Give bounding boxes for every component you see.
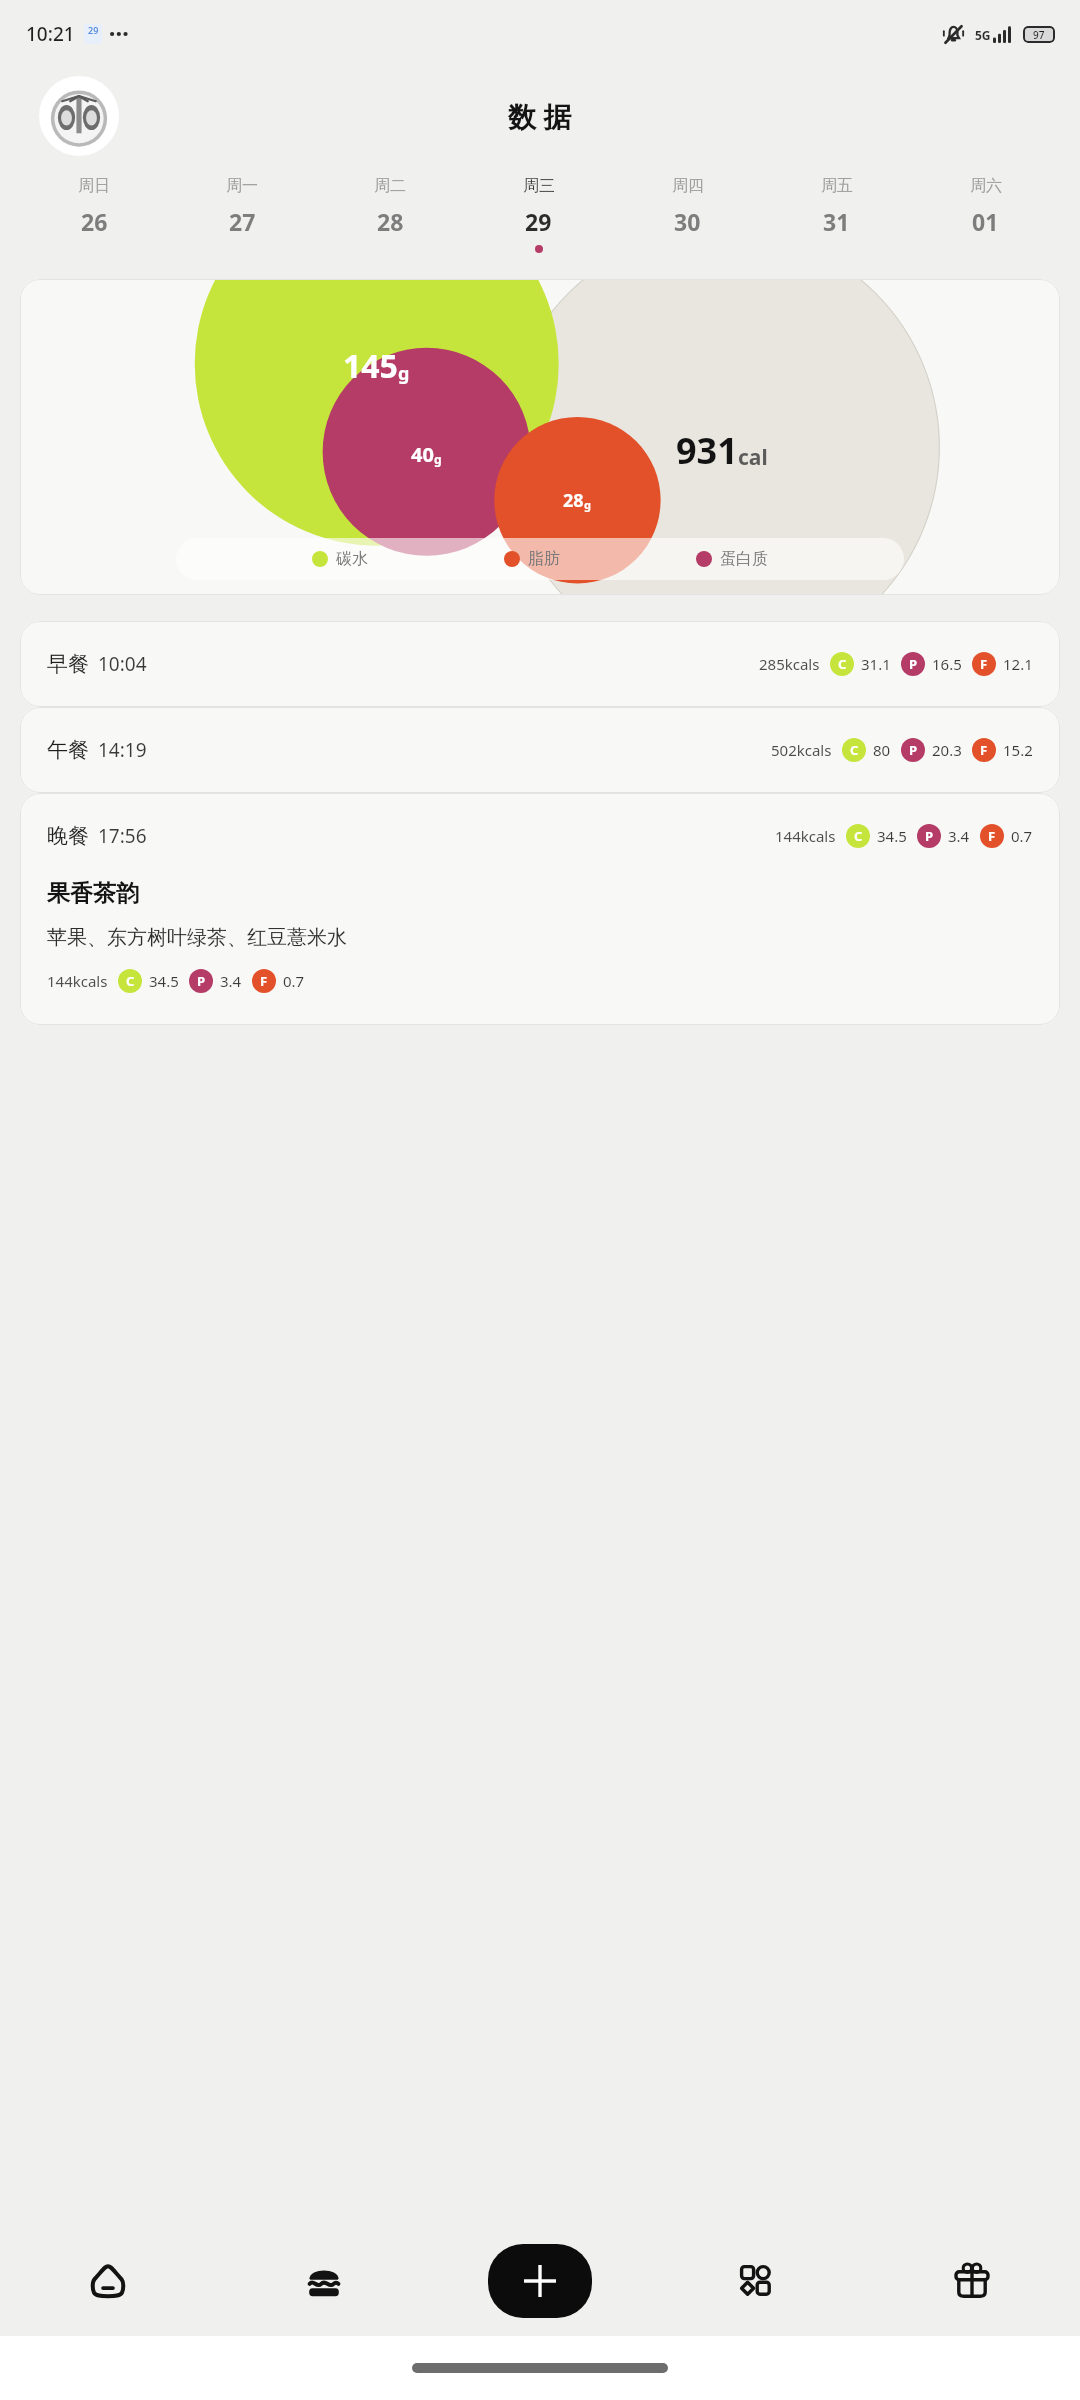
staticText: 3.4 [220, 971, 242, 991]
staticText: 15.2 [1003, 740, 1033, 760]
staticText: 931 [676, 426, 738, 475]
button[interactable]: 蛋白质 [696, 549, 768, 569]
staticText: 144kcals [775, 826, 836, 846]
staticText: 蛋白质 [720, 549, 768, 569]
button[interactable]: 早餐 [20, 621, 1060, 707]
staticText: 周四 [672, 176, 704, 196]
staticText: 果香茶韵 [47, 879, 139, 908]
staticText: F [980, 741, 988, 759]
button[interactable]: Add entry [488, 2244, 592, 2318]
staticText: 80 [873, 740, 891, 760]
staticText: 10:21 [26, 21, 75, 47]
staticText: 34.5 [149, 971, 179, 991]
staticText: P [197, 972, 206, 990]
staticText: 285kcals [759, 654, 820, 674]
staticText: C [854, 827, 863, 845]
staticText: C [850, 741, 859, 759]
button[interactable]: Rewards [864, 2226, 1080, 2336]
staticText: P [925, 827, 934, 845]
button[interactable]: Discover [648, 2226, 864, 2336]
staticText: 502kcals [771, 740, 832, 760]
button[interactable]: 晚餐 [20, 793, 1060, 1025]
staticText: 晚餐 [47, 823, 89, 849]
staticText: 数 据 [508, 97, 572, 135]
staticText: 0.7 [283, 971, 305, 991]
staticText: 29 [88, 24, 99, 36]
staticText: 26 [81, 206, 108, 237]
staticText: 周二 [374, 176, 406, 196]
staticText: 28 [377, 206, 404, 237]
staticText: 34.5 [877, 826, 907, 846]
staticText: 28 [563, 488, 584, 513]
staticText: C [126, 972, 135, 990]
button[interactable]: 周四 [613, 176, 762, 253]
staticText: 5G [975, 27, 991, 43]
staticText: 脂肪 [528, 549, 560, 569]
staticText: F [988, 827, 996, 845]
staticText: P [909, 655, 918, 673]
staticText: 29 [525, 206, 552, 237]
staticText: 31 [823, 206, 850, 237]
staticText: 周一 [226, 176, 258, 196]
button[interactable]: 周五 [762, 176, 911, 253]
staticText: 0.7 [1011, 826, 1033, 846]
button[interactable]: 周六 [911, 176, 1060, 253]
staticText: 午餐 [47, 737, 89, 763]
button[interactable]: 周二 [316, 176, 464, 253]
staticText: cal [738, 443, 768, 472]
button[interactable]: 周一 [168, 176, 316, 253]
button[interactable]: Meals [216, 2226, 432, 2336]
staticText: F [980, 655, 988, 673]
staticText: 苹果、东方树叶绿茶、红豆薏米水 [47, 925, 347, 950]
button[interactable]: 午餐 [20, 707, 1060, 793]
staticText: 周三 [523, 176, 555, 196]
staticText: 3.4 [948, 826, 970, 846]
button[interactable]: Profile [39, 76, 119, 156]
staticText: 14:19 [98, 737, 147, 763]
button[interactable]: 145 [20, 279, 1060, 595]
staticText: 97 [1033, 28, 1045, 42]
staticText: F [260, 972, 268, 990]
staticText: g [434, 451, 442, 467]
staticText: 10:04 [98, 651, 147, 677]
staticText: 27 [229, 206, 256, 237]
staticText: g [584, 497, 591, 512]
button[interactable]: Home [0, 2226, 216, 2336]
button[interactable]: 周三 [464, 176, 613, 253]
staticText: 周五 [821, 176, 853, 196]
staticText: 40 [411, 441, 434, 468]
staticText: 早餐 [47, 651, 89, 677]
staticText: 20.3 [932, 740, 962, 760]
staticText: 31.1 [861, 654, 891, 674]
button[interactable]: 碳水 [312, 549, 368, 569]
staticText: 16.5 [932, 654, 962, 674]
staticText: P [909, 741, 918, 759]
button[interactable]: 周日 [20, 176, 168, 253]
staticText: 01 [972, 206, 999, 237]
staticText: C [838, 655, 847, 673]
staticText: 30 [674, 206, 701, 237]
staticText: 12.1 [1003, 654, 1033, 674]
staticText: 17:56 [98, 823, 147, 849]
staticText: 周六 [970, 176, 1002, 196]
staticText: g [398, 361, 410, 386]
staticText: 145 [343, 344, 398, 388]
button[interactable]: 脂肪 [504, 549, 560, 569]
staticText: 碳水 [336, 549, 368, 569]
staticText: 144kcals [47, 971, 108, 991]
staticText: 周日 [78, 176, 110, 196]
